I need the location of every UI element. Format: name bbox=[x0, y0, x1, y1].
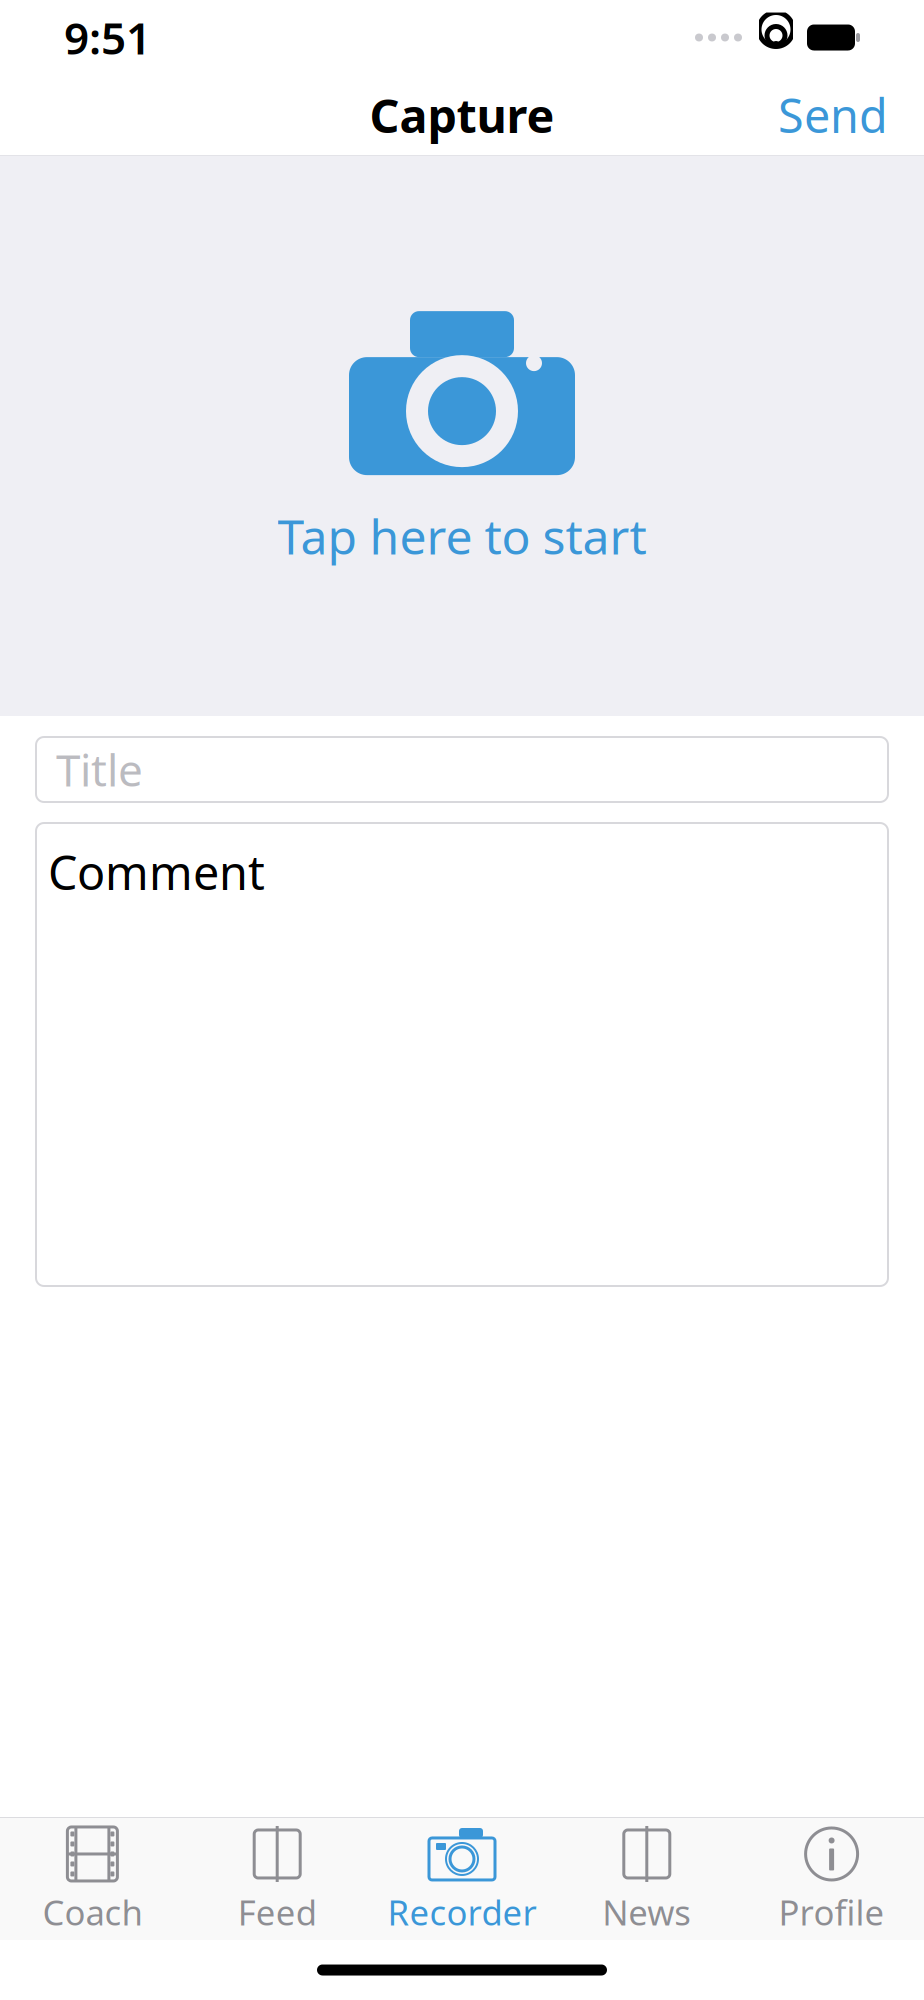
staticText: Feed bbox=[238, 1889, 317, 1935]
button[interactable]: Send bbox=[756, 72, 910, 158]
button[interactable]: Recorder bbox=[370, 1815, 554, 1943]
button[interactable]: Coach bbox=[0, 1815, 185, 1943]
staticText: Title bbox=[56, 740, 143, 799]
staticText: Comment bbox=[48, 841, 265, 903]
staticText: Capture bbox=[369, 84, 554, 146]
button[interactable]: Feed bbox=[185, 1815, 370, 1943]
staticText: Coach bbox=[42, 1889, 142, 1935]
staticText: 9:51 bbox=[64, 8, 151, 67]
button[interactable]: Comment bbox=[36, 823, 888, 1286]
staticText: Recorder bbox=[387, 1889, 536, 1935]
staticText: Send bbox=[778, 84, 888, 146]
button[interactable]: Profile bbox=[739, 1815, 924, 1943]
staticText: News bbox=[602, 1889, 691, 1935]
button[interactable]: Tap here to start bbox=[0, 156, 924, 716]
button[interactable]: Title bbox=[36, 737, 888, 802]
staticText: Profile bbox=[779, 1889, 885, 1935]
button[interactable]: News bbox=[554, 1815, 739, 1943]
staticText: Tap here to start bbox=[277, 504, 646, 568]
